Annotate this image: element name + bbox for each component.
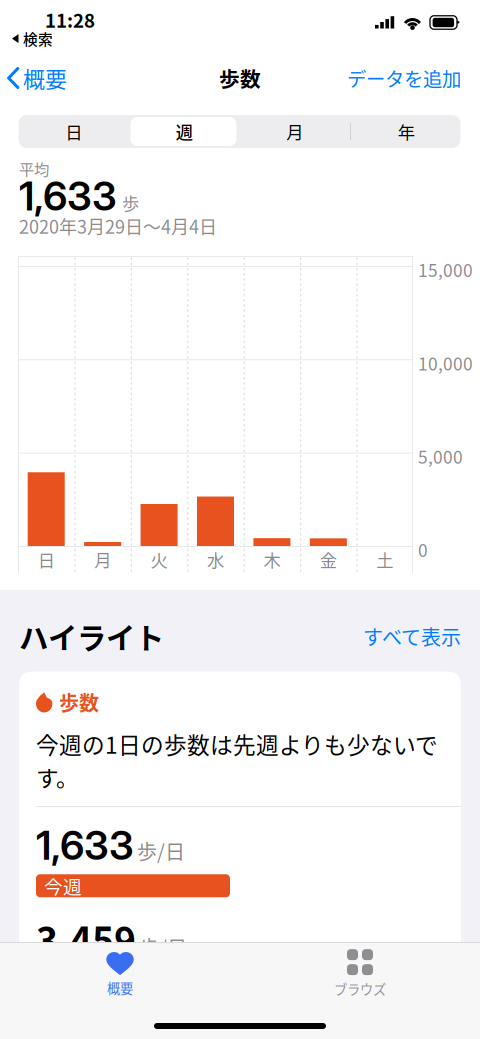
button[interactable]: 概要 (0, 54, 67, 102)
staticText: 水 (207, 547, 224, 572)
staticText: 日 (38, 547, 55, 572)
button[interactable]: 月 (239, 115, 350, 148)
staticText: 木 (263, 547, 280, 572)
staticText: 今週 (44, 872, 82, 899)
button[interactable]: 週 (129, 115, 239, 148)
staticText: 金 (320, 547, 337, 572)
staticText: すべて表示 (363, 622, 461, 651)
staticText: 15,000 (418, 257, 473, 282)
staticText: 概要 (23, 62, 67, 94)
button[interactable]: 年 (351, 115, 461, 148)
staticText: 2020年3月29日〜4月4日 (19, 213, 217, 239)
staticText: 概要 (107, 978, 133, 997)
staticText: 平均 (19, 157, 49, 180)
staticText: 0 (418, 537, 428, 562)
staticText: 今週の1日の歩数は先週よりも少ないです。 (36, 727, 438, 793)
staticText: 10,000 (418, 350, 473, 375)
staticText: 検索 (23, 28, 53, 49)
staticText: データを追加 (347, 64, 461, 92)
staticText: 年 (398, 119, 415, 144)
button[interactable]: すべて表示 (363, 622, 461, 651)
button[interactable]: 概要 (0, 949, 240, 999)
staticText: 日 (65, 119, 82, 144)
staticText: 歩数 (59, 687, 99, 716)
button[interactable]: 日 (18, 115, 129, 148)
staticText: 歩 (122, 190, 139, 215)
button[interactable]: ブラウズ (240, 949, 480, 999)
button[interactable]: データを追加 (347, 56, 480, 100)
button[interactable]: 歩数 (19, 671, 461, 1013)
staticText: 1,633 (19, 172, 117, 220)
staticText: 歩/日 (139, 932, 187, 961)
staticText: 5,000 (418, 444, 463, 469)
staticText: ブラウズ (334, 979, 386, 998)
staticText: 歩/日 (137, 836, 185, 865)
staticText: 月 (286, 119, 303, 144)
staticText: 週 (176, 119, 193, 144)
staticText: 歩数 (219, 63, 261, 93)
staticText: 土 (376, 547, 393, 572)
staticText: 11:28 (45, 6, 95, 33)
staticText: 火 (151, 547, 168, 572)
staticText: 月 (94, 547, 111, 572)
staticText: 3,459 (36, 911, 136, 965)
staticText: ハイライト (19, 615, 164, 657)
staticText: 1,633 (36, 821, 134, 869)
